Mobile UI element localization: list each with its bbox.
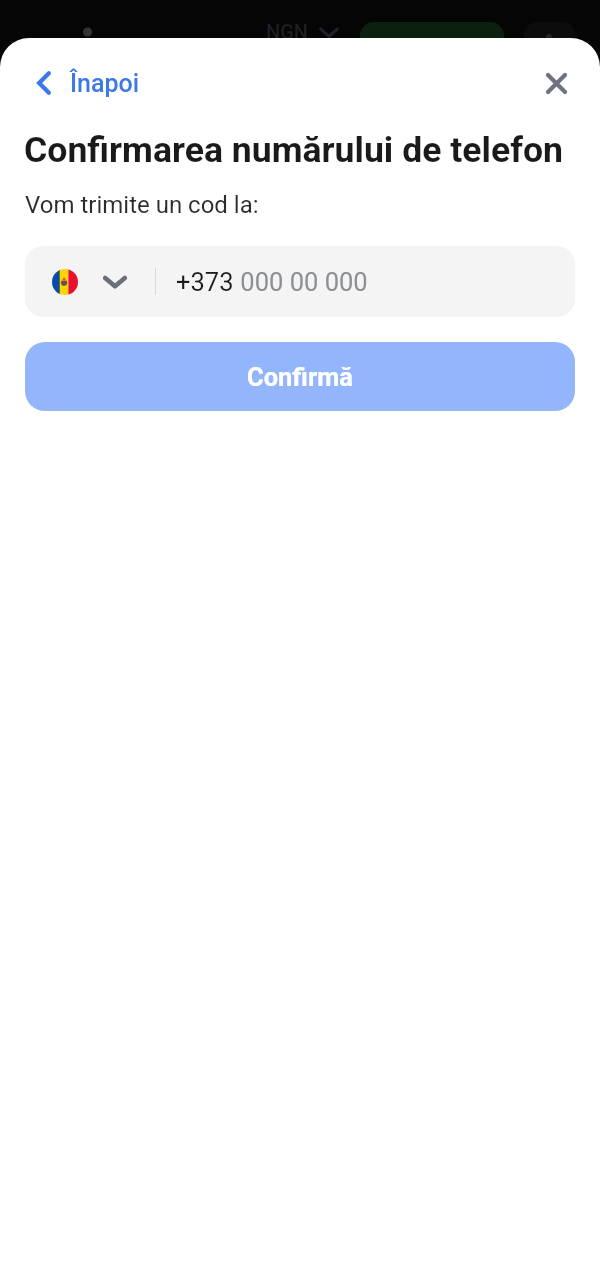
staticText: Înapoi [70,69,140,98]
staticText: NGN [266,20,309,43]
staticText: Confirmarea numărului de telefon [24,129,563,171]
button[interactable]: Înapoi [33,60,140,106]
staticText: +373 [176,267,234,297]
button[interactable]: +373 [156,246,575,317]
staticText: 000 00 000 [234,267,368,297]
button[interactable]: Confirmă [25,342,575,411]
staticText: Confirmă [247,362,353,392]
staticText: Vom trimite un cod la: [25,191,259,219]
button[interactable]: Select country code [39,246,155,317]
button[interactable]: Close [533,60,579,106]
